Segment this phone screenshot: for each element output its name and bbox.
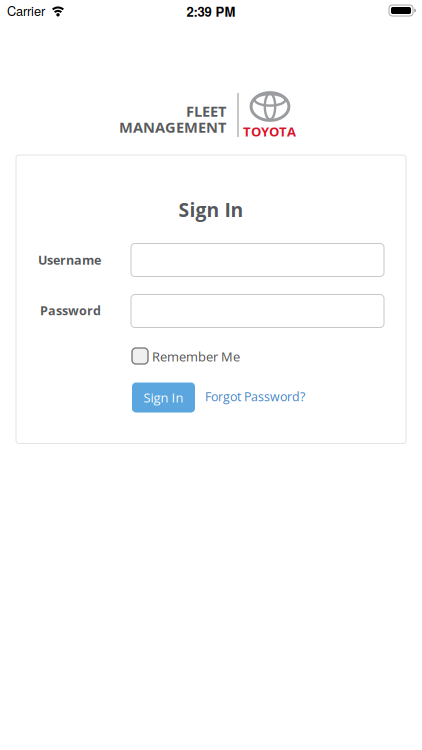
staticText: Remember Me xyxy=(152,348,240,365)
staticText: Carrier xyxy=(7,1,45,20)
staticText: Username xyxy=(38,251,101,269)
staticText: Password xyxy=(40,302,101,319)
staticText: Forgot Password? xyxy=(205,388,305,405)
button[interactable]: Sign In xyxy=(132,382,195,412)
staticText: Sign In xyxy=(143,389,183,406)
staticText: 2:39 PM xyxy=(186,2,235,21)
staticText: MANAGEMENT xyxy=(119,117,226,137)
staticText: TOYOTA xyxy=(243,123,296,140)
button[interactable]: Forgot Password? xyxy=(205,386,325,406)
button[interactable]: Password xyxy=(131,294,384,327)
staticText: FLEET xyxy=(186,101,226,121)
button[interactable]: Remember Me xyxy=(132,347,262,365)
staticText: Sign In xyxy=(178,196,243,223)
